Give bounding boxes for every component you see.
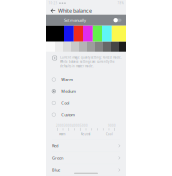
staticText: Cool <box>106 132 113 136</box>
button[interactable]: Set manually <box>46 15 126 26</box>
staticText: defaults in master mode. <box>60 64 94 68</box>
staticText: 10:23 <box>48 1 57 5</box>
staticText: Neutral <box>80 132 90 136</box>
staticText: 2000 <box>56 124 64 127</box>
staticText: Medium <box>61 89 76 94</box>
button[interactable]: Medium <box>46 85 126 97</box>
staticText: Current image quality setting: Forced mo… <box>60 56 122 59</box>
button[interactable]: Back <box>48 7 58 15</box>
staticText: Green <box>52 155 63 160</box>
button[interactable]: Custom <box>46 109 126 120</box>
button[interactable]: Green <box>46 152 126 164</box>
staticText: Warm <box>61 77 73 82</box>
staticText: Red <box>52 143 58 148</box>
staticText: Warm <box>59 132 65 136</box>
staticText: 78% <box>117 1 123 5</box>
button[interactable]: Cool <box>46 97 126 109</box>
staticText: 4000 <box>72 124 80 127</box>
staticText: White balance settings are currently the <box>60 60 115 63</box>
staticText: Cool <box>61 100 69 106</box>
staticText: Set manually <box>64 17 86 23</box>
button[interactable]: Blue <box>46 164 126 176</box>
staticText: 3000 <box>64 124 72 127</box>
staticText: White balance <box>58 7 92 14</box>
button[interactable]: Red <box>46 140 126 152</box>
button[interactable]: Warm <box>46 74 126 85</box>
staticText: Blue <box>52 167 60 173</box>
staticText: Custom <box>61 112 75 117</box>
staticText: 5000 <box>80 124 88 127</box>
staticText: 9000 <box>108 124 116 127</box>
